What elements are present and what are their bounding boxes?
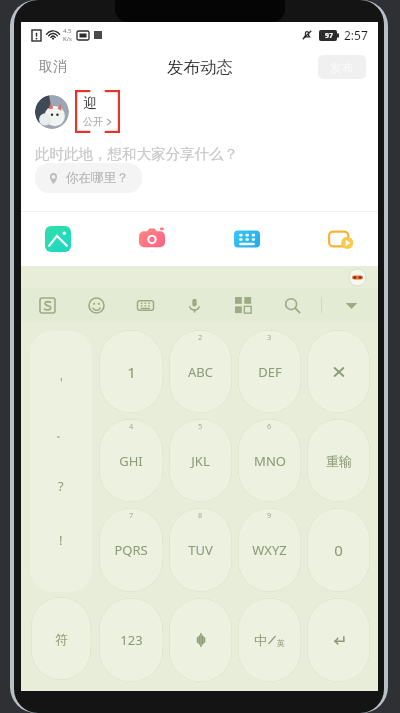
button[interactable]: 迎: [75, 90, 120, 133]
staticText: 97: [325, 31, 334, 41]
button[interactable]: 符: [31, 597, 91, 680]
staticText: 4: [129, 421, 134, 431]
button[interactable]: 1: [99, 330, 163, 413]
staticText: ABC: [188, 363, 213, 381]
staticText: !: [59, 531, 63, 549]
button[interactable]: DEF: [238, 330, 301, 413]
button[interactable]: 你在哪里？: [35, 163, 142, 193]
button[interactable]: grid: [230, 292, 256, 318]
button[interactable]: search: [279, 292, 305, 318]
button[interactable]: mic: [181, 292, 207, 318]
button[interactable]: down: [338, 292, 364, 318]
staticText: 123: [120, 631, 143, 649]
staticText: 2:57: [344, 27, 368, 43]
staticText: ': [60, 374, 63, 390]
button[interactable]: PQRS: [99, 508, 163, 592]
staticText: 发布动态: [167, 57, 233, 78]
staticText: 英: [277, 638, 285, 648]
button[interactable]: Camera: [133, 220, 171, 258]
staticText: 公开: [83, 115, 103, 128]
staticText: 重输: [326, 453, 352, 469]
staticText: K/s: [63, 35, 72, 43]
staticText: 此时此地，想和大家分享什么？: [35, 145, 238, 163]
button[interactable]: emoji: [83, 292, 109, 318]
staticText: 发布: [330, 60, 354, 75]
button[interactable]: kb: [132, 292, 158, 318]
button[interactable]: 中: [238, 598, 301, 682]
staticText: 符: [55, 631, 68, 647]
staticText: TUV: [188, 541, 213, 559]
button[interactable]: ': [30, 331, 92, 592]
staticText: 6: [267, 421, 272, 431]
button[interactable]: WXYZ: [238, 508, 301, 592]
button[interactable]: 取消: [35, 54, 71, 80]
staticText: 5: [198, 421, 203, 431]
button[interactable]: 0: [307, 508, 370, 592]
button[interactable]: [307, 598, 370, 682]
staticText: 你在哪里？: [66, 170, 129, 186]
button[interactable]: [169, 598, 232, 682]
staticText: ?: [58, 477, 64, 495]
button[interactable]: Keyboard: [228, 220, 266, 258]
staticText: MNO: [254, 452, 286, 470]
staticText: 4.5: [63, 27, 72, 35]
staticText: 中: [254, 632, 267, 648]
staticText: JKL: [191, 452, 210, 470]
button[interactable]: [307, 330, 370, 413]
staticText: 0: [334, 540, 343, 560]
staticText: 9: [267, 510, 272, 520]
staticText: 3: [267, 332, 272, 342]
button[interactable]: sogou: [34, 292, 60, 318]
button[interactable]: ABC: [169, 330, 232, 413]
button[interactable]: 123: [99, 598, 163, 682]
staticText: DEF: [258, 363, 282, 381]
staticText: 。: [56, 426, 67, 440]
button[interactable]: Photo: [39, 220, 77, 258]
staticText: WXYZ: [252, 541, 287, 559]
staticText: 8: [198, 510, 203, 520]
button[interactable]: 重输: [307, 419, 370, 502]
staticText: 1: [127, 362, 136, 382]
button[interactable]: TUV: [169, 508, 232, 592]
staticText: PQRS: [114, 541, 148, 559]
staticText: 迎: [83, 95, 97, 113]
button[interactable]: GHI: [99, 419, 163, 502]
button[interactable]: JKL: [169, 419, 232, 502]
button[interactable]: Video: [322, 220, 360, 258]
staticText: 2: [198, 332, 203, 342]
button[interactable]: MNO: [238, 419, 301, 502]
button[interactable]: Avatar: [35, 95, 69, 129]
staticText: 7: [129, 510, 134, 520]
staticText: GHI: [119, 452, 143, 470]
